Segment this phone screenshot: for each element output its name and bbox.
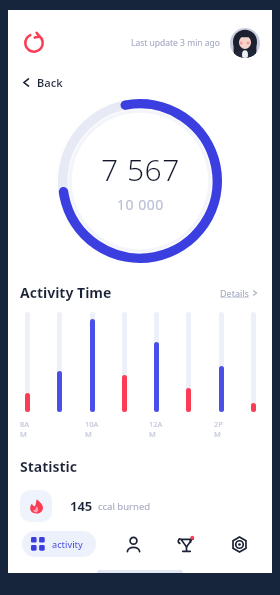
button[interactable]: Achievements [171,529,201,559]
staticText: 10AM [85,419,99,439]
button[interactable]: Details [218,285,260,301]
button[interactable]: 145 [20,488,260,524]
button[interactable]: activity [22,531,96,557]
button[interactable] [246,312,260,412]
staticText: activity [52,538,83,550]
button[interactable] [20,312,34,412]
staticText: 2PM [214,419,228,439]
staticText: 12AM [149,419,163,439]
button[interactable]: Goals [224,529,254,559]
staticText: Activity Time [20,283,112,302]
staticText: Statistic [20,457,77,476]
staticText: 10 000 [117,195,164,214]
button[interactable]: Profile [230,28,260,58]
staticText: 7 567 [101,149,180,190]
button[interactable] [117,312,131,412]
staticText: Last update 3 min ago [131,37,220,49]
button[interactable]: Back [20,72,65,93]
staticText: ccal burned [98,500,151,513]
button[interactable]: Refresh [20,29,48,57]
button[interactable] [52,312,66,412]
button[interactable] [149,312,163,412]
staticText: 145 [70,497,93,515]
button[interactable] [85,312,99,412]
button[interactable] [181,312,195,412]
staticText: Details [220,287,249,299]
staticText: Back [37,75,63,90]
button[interactable]: Profile [118,529,148,559]
staticText: 8AM [20,419,34,439]
button[interactable] [214,312,228,412]
